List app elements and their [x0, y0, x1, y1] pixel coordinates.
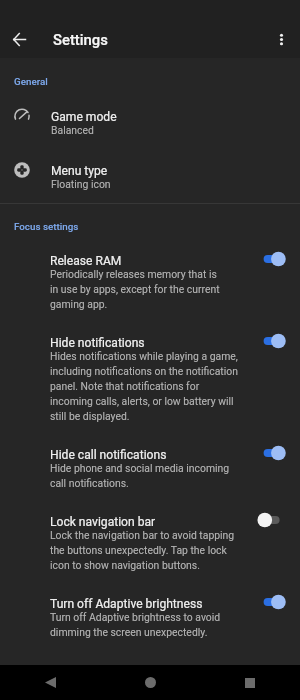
- button[interactable]: Switch off: [254, 505, 290, 535]
- staticText: Settings: [53, 31, 108, 48]
- button[interactable]: Switch on: [254, 326, 290, 356]
- staticText: Game mode: [51, 110, 117, 124]
- staticText: Menu type: [51, 164, 108, 178]
- button[interactable]: Switch on: [254, 587, 290, 617]
- staticText: Floating icon: [51, 178, 111, 190]
- button[interactable]: More options: [262, 20, 300, 58]
- button[interactable]: Navigate up: [0, 20, 38, 58]
- staticText: General: [14, 76, 48, 87]
- button[interactable]: Recent apps: [200, 665, 300, 700]
- staticText: Hides notifications while playing a game…: [50, 350, 238, 422]
- staticText: Lock the navigation bar to avoid tapping…: [50, 529, 235, 571]
- button[interactable]: Game mode: [0, 96, 300, 150]
- staticText: Periodically releases memory that is in …: [50, 268, 220, 310]
- button[interactable]: Release RAM: [0, 241, 300, 323]
- button[interactable]: Lock navigation bar: [0, 502, 300, 584]
- staticText: Focus settings: [14, 221, 79, 232]
- button[interactable]: Turn off Adaptive brightness: [0, 584, 300, 651]
- staticText: Turn off Adaptive brightness: [50, 597, 203, 611]
- staticText: Turn off Adaptive brightness to avoid di…: [50, 611, 221, 638]
- staticText: Hide phone and social media incoming cal…: [50, 462, 230, 489]
- staticText: Balanced: [51, 124, 94, 136]
- button[interactable]: Hide call notifications: [0, 435, 300, 502]
- button[interactable]: Back: [0, 665, 100, 700]
- staticText: Hide call notifications: [50, 448, 167, 462]
- button[interactable]: Menu type: [0, 150, 300, 204]
- button[interactable]: Switch on: [254, 244, 290, 274]
- button[interactable]: Switch on: [254, 438, 290, 468]
- staticText: Hide notifications: [50, 336, 145, 350]
- button[interactable]: Home: [100, 665, 200, 700]
- staticText: Lock navigation bar: [50, 515, 156, 529]
- button[interactable]: Hide notifications: [0, 323, 300, 435]
- staticText: Release RAM: [50, 254, 122, 268]
